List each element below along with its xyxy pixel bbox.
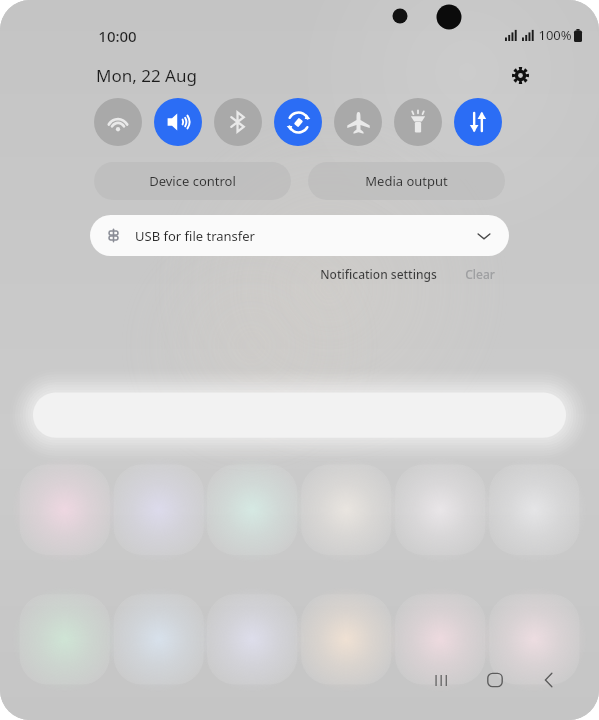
- button[interactable]: Flashlight: [394, 98, 442, 146]
- button[interactable]: Mobile data: [454, 98, 502, 146]
- button[interactable]: Wi-Fi: [94, 98, 142, 146]
- button[interactable]: Recents: [419, 658, 463, 702]
- button[interactable]: Flight mode: [334, 98, 382, 146]
- staticText: 100%: [538, 26, 572, 44]
- button[interactable]: Settings: [503, 60, 537, 90]
- button[interactable]: Notification settings: [316, 262, 441, 286]
- staticText: 10:00: [98, 26, 137, 46]
- button[interactable]: Device control: [94, 162, 291, 200]
- staticText: Notification settings: [320, 266, 437, 282]
- button[interactable]: Auto rotate: [274, 98, 322, 146]
- staticText: Device control: [149, 172, 236, 190]
- button[interactable]: Sound: [154, 98, 202, 146]
- button[interactable]: Media output: [308, 162, 505, 200]
- button[interactable]: Home: [473, 658, 517, 702]
- button[interactable]: Clear: [461, 262, 499, 286]
- staticText: USB for file transfer: [135, 227, 255, 245]
- button[interactable]: Bluetooth: [214, 98, 262, 146]
- staticText: Mon, 22 Aug: [96, 64, 197, 87]
- staticText: Clear: [465, 266, 495, 282]
- button[interactable]: USB for file transfer: [90, 215, 509, 256]
- staticText: Media output: [365, 172, 448, 190]
- button[interactable]: Back: [527, 658, 571, 702]
